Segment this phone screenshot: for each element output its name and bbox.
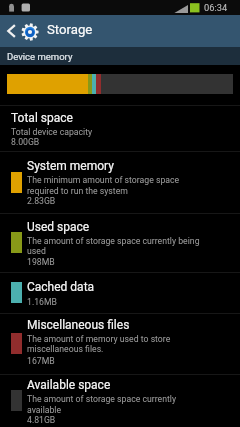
button[interactable] xyxy=(0,151,240,213)
staticText: required to run the system xyxy=(27,186,128,196)
staticText: 06:34 xyxy=(204,2,228,13)
staticText: System memory xyxy=(27,159,114,173)
staticText: The amount of memory used to store xyxy=(27,334,171,344)
staticText: 8.00GB xyxy=(11,137,40,147)
staticText: Total device capacity xyxy=(11,127,93,137)
button[interactable] xyxy=(0,374,240,427)
button[interactable] xyxy=(0,213,240,272)
staticText: Cached data xyxy=(27,280,95,294)
staticText: 2.83GB xyxy=(27,196,56,206)
staticText: Device memory xyxy=(7,51,73,62)
button[interactable] xyxy=(0,272,240,313)
staticText: Total space xyxy=(11,111,73,125)
staticText: The amount of storage space currently be… xyxy=(27,236,200,246)
staticText: miscellaneous files. xyxy=(27,344,104,354)
staticText: Storage xyxy=(47,22,93,37)
button[interactable] xyxy=(0,313,240,374)
staticText: 167MB xyxy=(27,356,55,366)
button[interactable] xyxy=(0,105,240,152)
button[interactable]: Navigate up xyxy=(2,15,20,47)
staticText: The amount of storage space currently xyxy=(27,394,177,404)
staticText: used xyxy=(27,246,46,256)
staticText: Miscellaneous files xyxy=(27,318,130,332)
staticText: Used space xyxy=(27,220,90,234)
staticText: 198MB xyxy=(27,257,55,267)
staticText: The minimum amount of storage space xyxy=(27,175,180,185)
staticText: 4.81GB xyxy=(27,415,56,425)
staticText: 1.16MB xyxy=(27,297,57,307)
staticText: available xyxy=(27,405,62,415)
staticText: Available space xyxy=(27,378,111,392)
